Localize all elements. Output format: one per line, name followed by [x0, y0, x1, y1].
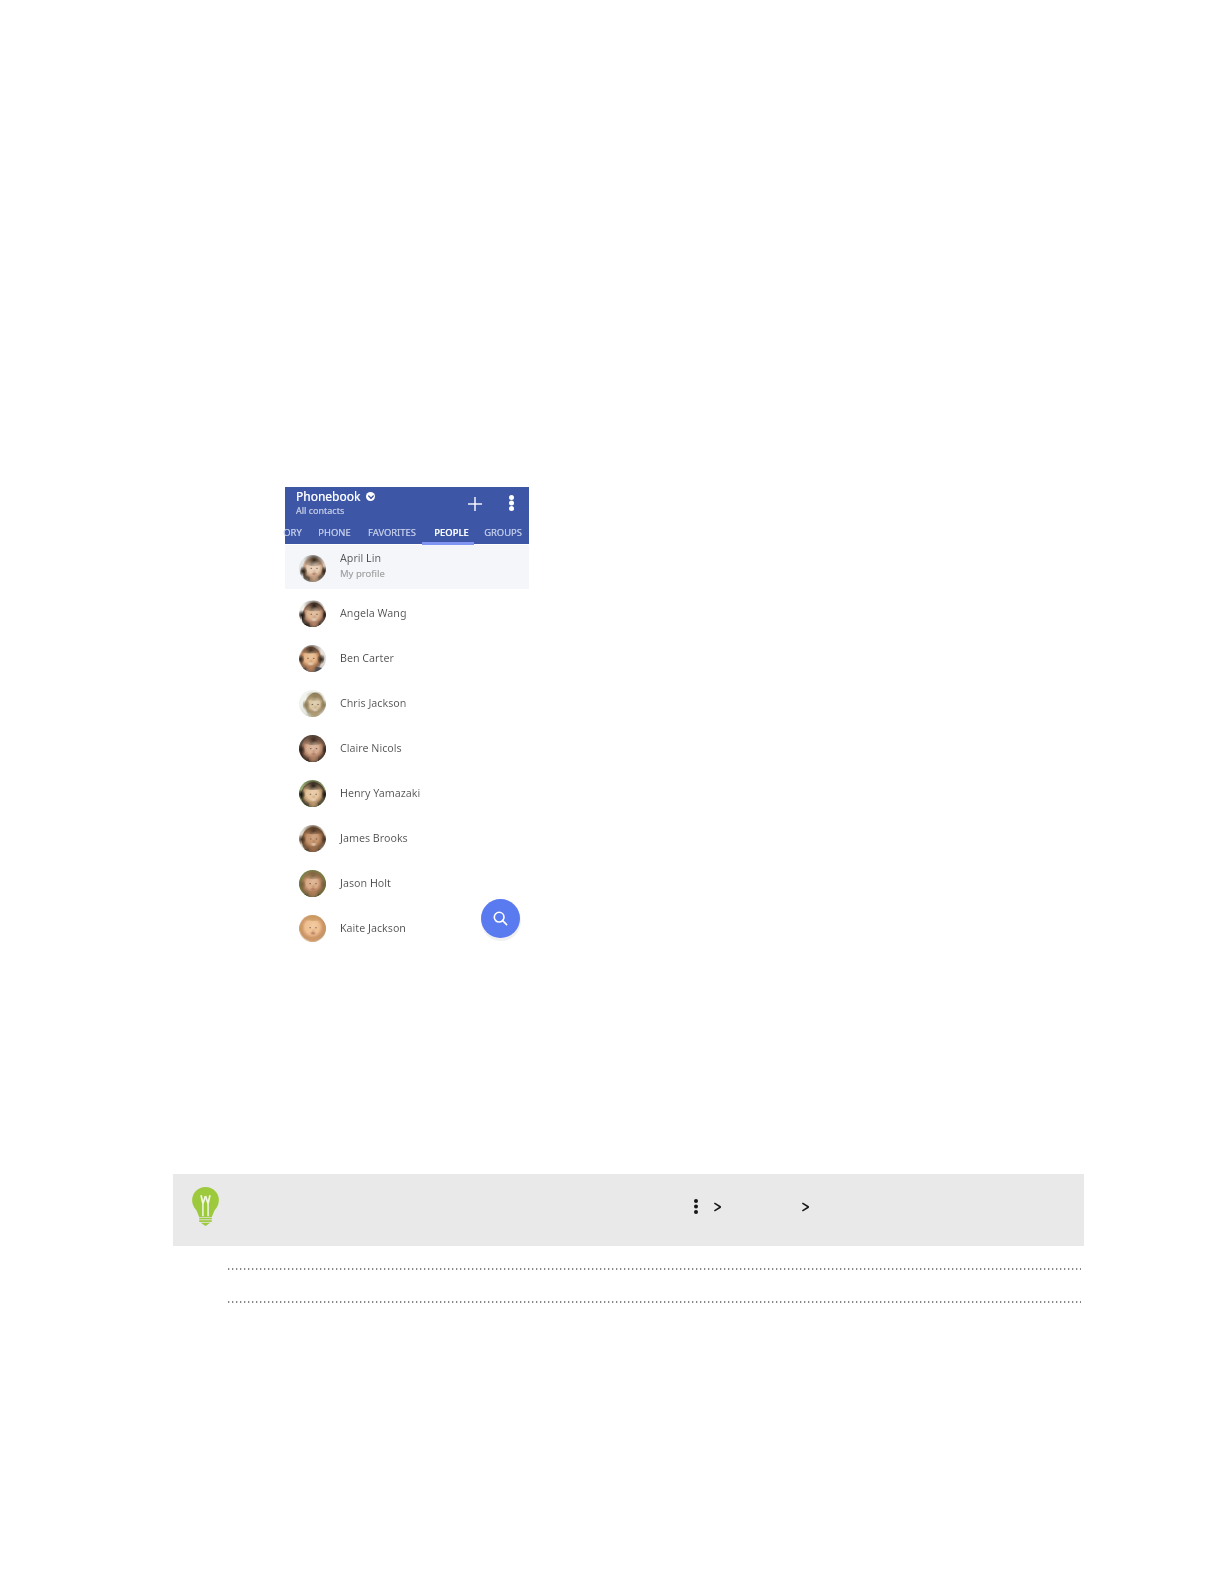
button[interactable]: Kaite Jackson — [285, 906, 529, 951]
button[interactable]: More options — [499, 491, 523, 515]
staticText: James Brooks — [340, 831, 408, 846]
staticText: Ben Carter — [340, 651, 394, 666]
button[interactable]: James Brooks — [285, 816, 529, 861]
button[interactable] — [285, 545, 529, 589]
staticText: FAVORITES — [368, 526, 416, 539]
staticText: All contacts — [296, 504, 345, 516]
button[interactable]: Jason Holt — [285, 861, 529, 906]
button[interactable]: GROUPS — [479, 523, 527, 544]
staticText: PHONE — [318, 526, 351, 539]
button[interactable]: Claire Nicols — [285, 726, 529, 771]
button[interactable]: PEOPLE — [429, 523, 473, 544]
button[interactable]: Henry Yamazaki — [285, 771, 529, 816]
button[interactable]: FAVORITES — [364, 523, 420, 544]
button[interactable]: Angela Wang — [285, 591, 529, 636]
staticText: PEOPLE — [434, 526, 469, 539]
staticText: Claire Nicols — [340, 741, 402, 756]
staticText: April Lin — [340, 551, 382, 566]
staticText: Chris Jackson — [340, 696, 407, 711]
button[interactable]: Chris Jackson — [285, 681, 529, 726]
button[interactable]: PHONE — [314, 523, 354, 544]
staticText: My profile — [340, 567, 385, 580]
button[interactable]: ORY — [280, 523, 304, 544]
button[interactable]: Ben Carter — [285, 636, 529, 681]
staticText: Angela Wang — [340, 606, 407, 621]
button[interactable]: Search — [481, 899, 520, 938]
staticText: Jason Holt — [340, 876, 391, 891]
staticText: Phonebook — [296, 488, 361, 504]
staticText: ORY — [283, 526, 302, 539]
button[interactable]: Add contact — [463, 492, 487, 516]
button[interactable]: Switch account — [366, 492, 375, 501]
button[interactable]: April Lin — [285, 546, 529, 591]
staticText: Kaite Jackson — [340, 921, 406, 936]
staticText: Henry Yamazaki — [340, 786, 421, 801]
staticText: GROUPS — [484, 526, 522, 539]
